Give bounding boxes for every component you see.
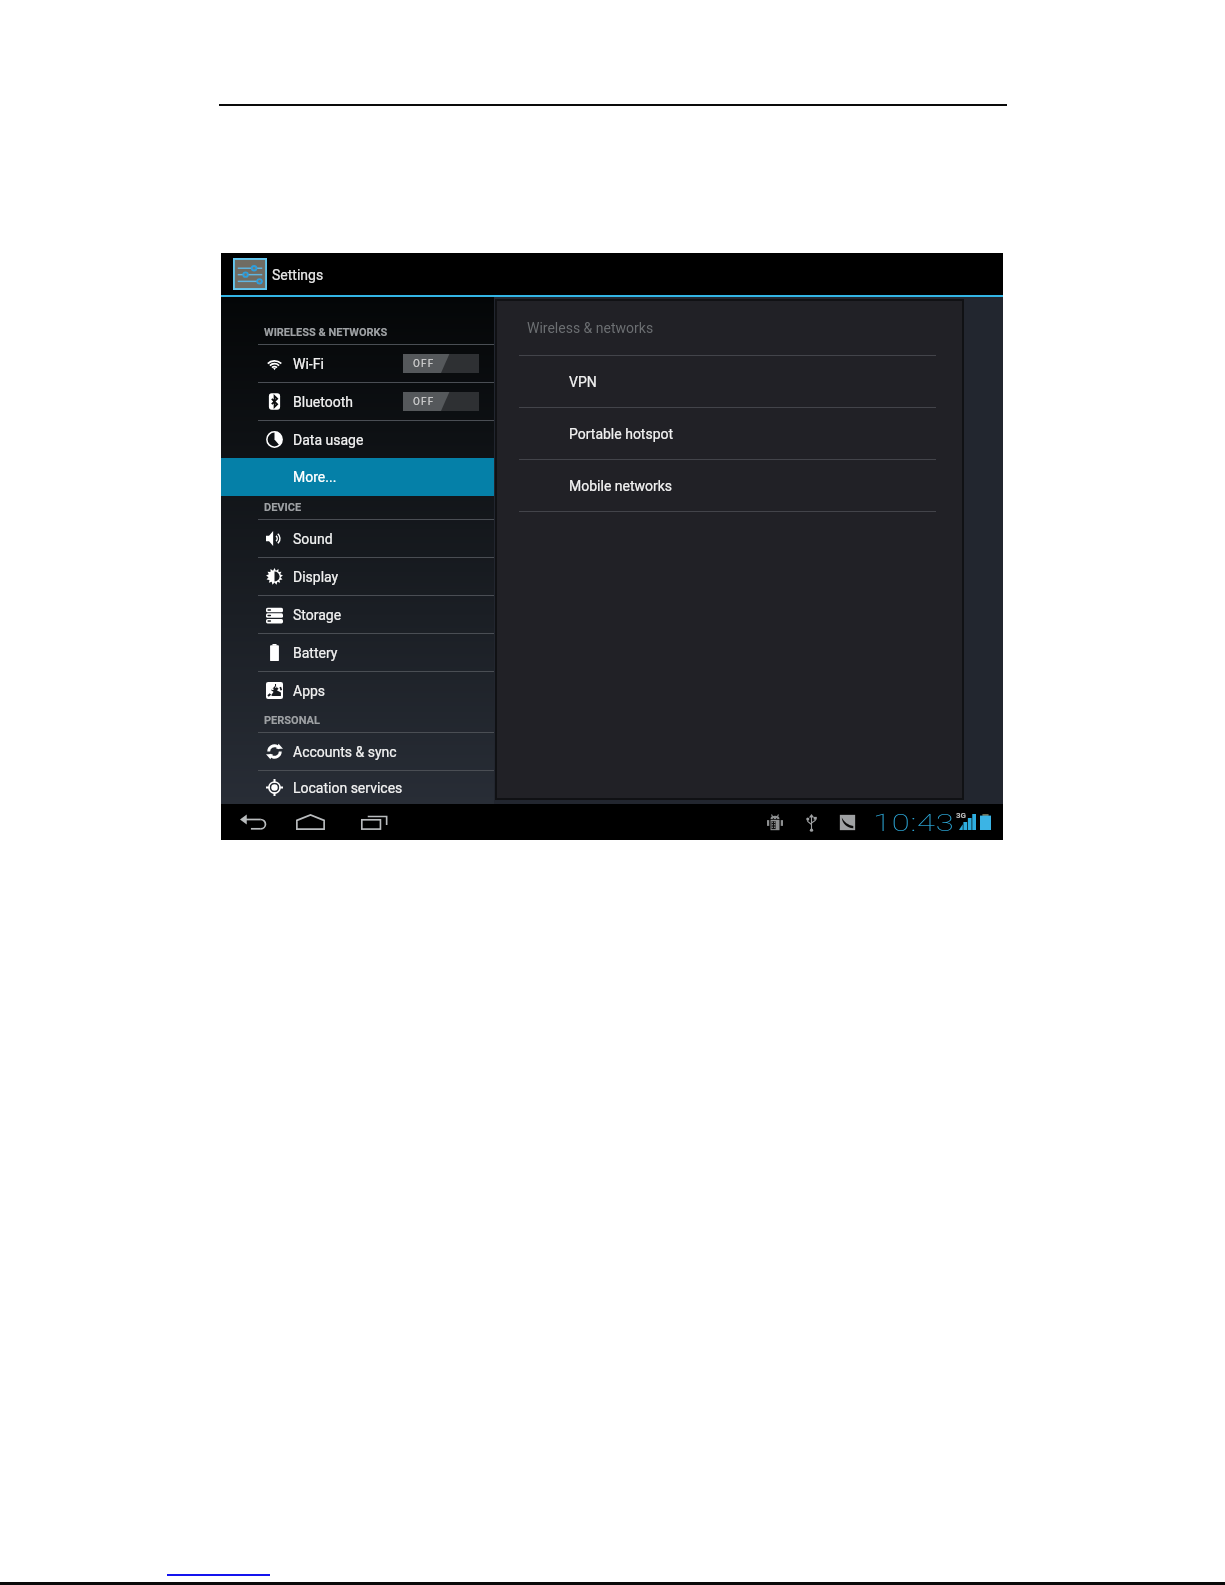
button[interactable]: Mobile networks bbox=[497, 460, 962, 511]
button[interactable]: Accounts & sync bbox=[221, 733, 494, 770]
staticText: More... bbox=[293, 469, 337, 485]
button[interactable]: More... bbox=[221, 458, 494, 496]
staticText: Apps bbox=[293, 683, 326, 699]
staticText: DEVICE bbox=[264, 501, 302, 514]
staticText: OFF bbox=[413, 358, 435, 370]
button[interactable]: Storage bbox=[221, 596, 494, 633]
staticText: Bluetooth bbox=[293, 394, 353, 410]
button[interactable]: Wi-Fi bbox=[221, 345, 494, 382]
staticText: Location services bbox=[293, 780, 403, 796]
staticText: Portable hotspot bbox=[569, 426, 674, 442]
button[interactable]: Data usage bbox=[221, 421, 494, 458]
button[interactable]: VPN bbox=[497, 356, 962, 407]
staticText: Wireless & networks bbox=[527, 320, 654, 336]
staticText: WIRELESS & NETWORKS bbox=[264, 326, 388, 339]
button[interactable]: Recent apps bbox=[349, 805, 399, 839]
staticText: Accounts & sync bbox=[293, 744, 397, 760]
staticText: VPN bbox=[569, 374, 597, 390]
button[interactable]: Back bbox=[228, 805, 278, 839]
button[interactable]: Battery bbox=[221, 634, 494, 671]
staticText: Wi-Fi bbox=[293, 356, 324, 372]
staticText: Data usage bbox=[293, 432, 364, 448]
staticText: 3G bbox=[956, 811, 967, 820]
staticText: PERSONAL bbox=[264, 714, 320, 727]
staticText: Sound bbox=[293, 531, 333, 547]
button[interactable]: Location services bbox=[221, 771, 494, 804]
button[interactable]: Bluetooth bbox=[221, 383, 494, 420]
staticText: Battery bbox=[293, 645, 338, 661]
staticText: Display bbox=[293, 569, 339, 585]
staticText: OFF bbox=[413, 396, 435, 408]
button[interactable]: Portable hotspot bbox=[497, 408, 962, 459]
button[interactable]: Apps bbox=[221, 672, 494, 709]
button[interactable]: Sound bbox=[221, 520, 494, 557]
button[interactable]: Display bbox=[221, 558, 494, 595]
staticText: Settings bbox=[272, 267, 324, 283]
staticText: Mobile networks bbox=[569, 478, 673, 494]
staticText: Storage bbox=[293, 607, 342, 623]
staticText: 10:43 bbox=[873, 810, 955, 837]
button[interactable]: Home bbox=[285, 805, 335, 839]
